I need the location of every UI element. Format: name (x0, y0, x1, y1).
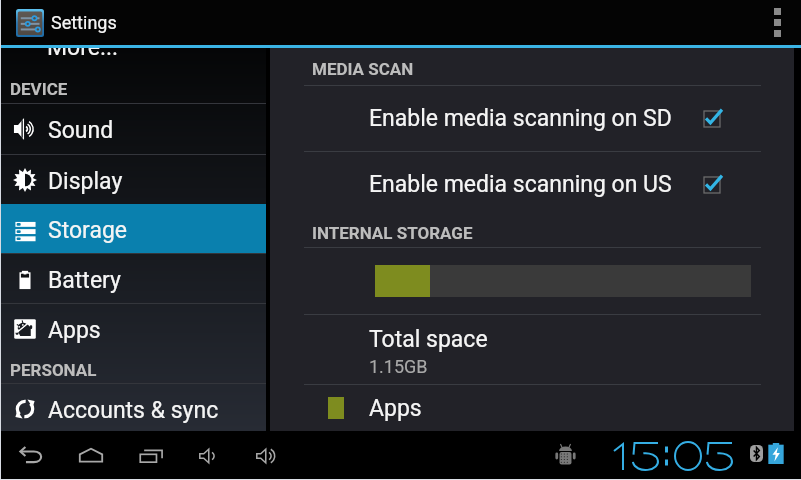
button[interactable]: Storage (0, 204, 266, 253)
button[interactable]: Apps (270, 385, 794, 431)
button[interactable]: Home (62, 431, 120, 480)
button[interactable]: Settings (16, 9, 44, 37)
staticText: Apps (48, 317, 101, 344)
staticText: More... (47, 48, 119, 61)
staticText: DEVICE (10, 79, 68, 99)
button[interactable]: Enable media scanning on SD card (270, 85, 794, 151)
button[interactable]: Back (2, 431, 60, 480)
staticText: Apps (369, 395, 422, 422)
staticText: Enable media scanning on SD card (369, 105, 671, 132)
button[interactable]: Recents (123, 431, 181, 480)
button[interactable]: Battery (0, 254, 266, 303)
button[interactable]: Total space (270, 314, 794, 384)
button[interactable]: More options (753, 0, 801, 45)
staticText: Storage (48, 217, 128, 244)
button[interactable]: Sound (0, 104, 266, 153)
button[interactable]: Enable media scanning on USB storage (270, 151, 794, 217)
button[interactable]: Apps (0, 304, 266, 353)
staticText: Battery (48, 267, 121, 294)
staticText: Sound (48, 117, 114, 144)
staticText: MEDIA SCAN (312, 59, 414, 79)
button[interactable]: Display (0, 155, 266, 204)
staticText: 1.15GB (369, 356, 428, 377)
staticText: Enable media scanning on USB storage (369, 171, 671, 198)
staticText: INTERNAL STORAGE (312, 223, 473, 243)
staticText: PERSONAL (10, 360, 97, 380)
staticText: Accounts & sync (48, 397, 219, 424)
button[interactable]: Volume up (239, 431, 297, 480)
staticText: Settings (51, 12, 117, 33)
staticText: Display (48, 168, 123, 195)
button[interactable]: Volume down (182, 431, 240, 480)
staticText: Total space (369, 326, 488, 353)
button[interactable]: Accounts & sync (0, 384, 266, 431)
